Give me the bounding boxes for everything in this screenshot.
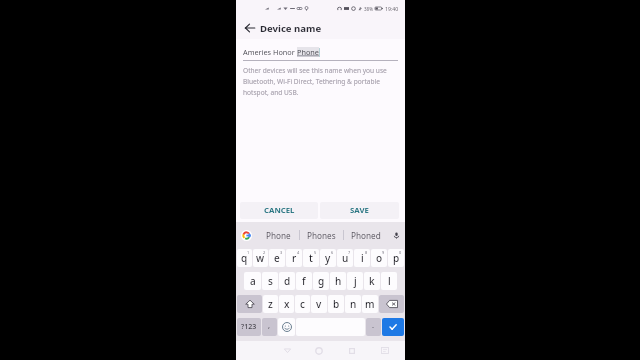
button[interactable]: Phoned: [344, 222, 387, 248]
button[interactable]: a: [244, 272, 261, 290]
staticText: u: [342, 251, 349, 265]
staticText: b: [333, 297, 340, 311]
staticText: 1: [247, 250, 250, 255]
staticText: f: [302, 274, 306, 288]
staticText: h: [335, 274, 342, 288]
staticText: 7: [348, 250, 351, 255]
staticText: 0: [399, 250, 402, 255]
button[interactable]: Hide keyboard: [368, 341, 401, 360]
button[interactable]: f: [296, 272, 312, 290]
button[interactable]: u: [337, 249, 353, 267]
button[interactable]: ?123: [237, 318, 261, 336]
staticText: a: [250, 274, 256, 288]
staticText: 4: [297, 250, 300, 255]
button[interactable]: Phones: [300, 222, 343, 248]
button[interactable]: .: [366, 318, 381, 336]
staticText: 5: [314, 250, 317, 255]
button[interactable]: Voice input: [387, 222, 405, 248]
button[interactable]: v: [311, 295, 327, 313]
staticText: Phone: [266, 230, 291, 241]
button[interactable]: p: [388, 249, 404, 267]
staticText: g: [318, 274, 325, 288]
staticText: j: [354, 274, 357, 288]
button[interactable]: Backspace: [379, 295, 404, 313]
button[interactable]: c: [295, 295, 310, 313]
staticText: c: [300, 297, 305, 311]
staticText: Device name: [260, 22, 322, 35]
staticText: m: [365, 297, 375, 311]
button[interactable]: l: [381, 272, 397, 290]
button[interactable]: m: [362, 295, 378, 313]
button[interactable]: Ameries Honor: [236, 39, 405, 61]
button[interactable]: o: [371, 249, 387, 267]
button[interactable]: i: [354, 249, 370, 267]
staticText: s: [268, 274, 273, 288]
staticText: 8: [365, 250, 368, 255]
staticText: e: [274, 251, 280, 265]
button[interactable]: j: [347, 272, 363, 290]
staticText: x: [284, 297, 290, 311]
staticText: l: [388, 274, 391, 288]
staticText: .: [372, 320, 375, 330]
button[interactable]: Home: [303, 341, 335, 360]
button[interactable]: CANCEL: [240, 202, 318, 219]
staticText: Phone: [297, 47, 319, 57]
button[interactable]: Shift: [237, 295, 262, 313]
button[interactable]: ,: [262, 318, 277, 336]
button[interactable]: w: [253, 249, 268, 267]
button[interactable]: Google: [236, 222, 257, 248]
button[interactable]: q: [237, 249, 252, 267]
staticText: z: [268, 297, 273, 311]
staticText: d: [284, 274, 291, 288]
button[interactable]: r: [286, 249, 302, 267]
button[interactable]: n: [345, 295, 361, 313]
staticText: SAVE: [350, 205, 369, 216]
button[interactable]: h: [330, 272, 346, 290]
staticText: n: [350, 297, 357, 311]
staticText: 6: [331, 250, 334, 255]
staticText: ?123: [241, 322, 257, 332]
staticText: Ameries Honor: [243, 47, 297, 57]
staticText: y: [325, 251, 331, 265]
staticText: w: [256, 251, 265, 265]
staticText: r: [292, 251, 297, 265]
button[interactable]: b: [328, 295, 344, 313]
staticText: 9: [382, 250, 385, 255]
staticText: i: [361, 251, 364, 265]
button[interactable]: t: [303, 249, 319, 267]
button[interactable]: SAVE: [320, 202, 399, 219]
button[interactable]: d: [279, 272, 295, 290]
button[interactable]: x: [279, 295, 294, 313]
staticText: v: [316, 297, 322, 311]
button[interactable]: g: [313, 272, 329, 290]
button[interactable]: e: [269, 249, 285, 267]
staticText: 2: [263, 250, 266, 255]
staticText: Other devices will see this name when yo…: [243, 66, 402, 97]
staticText: CANCEL: [264, 205, 295, 216]
staticText: Phones: [307, 230, 336, 241]
staticText: t: [309, 251, 313, 265]
staticText: 38%: [364, 6, 373, 12]
staticText: o: [376, 251, 383, 265]
button[interactable]: Emoji: [278, 318, 295, 336]
staticText: 19:40: [385, 5, 399, 12]
button[interactable]: Enter: [382, 318, 404, 336]
staticText: k: [369, 274, 375, 288]
button[interactable]: Back: [241, 19, 259, 37]
staticText: p: [393, 251, 400, 265]
button[interactable]: k: [364, 272, 380, 290]
staticText: q: [241, 251, 248, 265]
button[interactable]: y: [320, 249, 336, 267]
button[interactable]: Phone: [257, 222, 299, 248]
button[interactable]: z: [263, 295, 278, 313]
staticText: Phoned: [351, 230, 381, 241]
button[interactable]: Recents: [335, 341, 368, 360]
staticText: 3: [280, 250, 283, 255]
button[interactable]: s: [262, 272, 278, 290]
staticText: ,: [268, 320, 271, 330]
